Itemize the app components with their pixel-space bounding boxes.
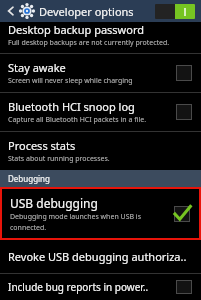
button[interactable]: Bluetooth HCI snoop log: [0, 93, 201, 131]
staticText: Developer options: [39, 4, 134, 19]
staticText: Screen will never sleep while charging: [8, 76, 133, 86]
staticText: Debugging: [8, 173, 50, 184]
button[interactable]: Unchecked: [173, 280, 195, 294]
staticText: Desktop backup password: [8, 22, 145, 37]
staticText: Stay awake: [8, 60, 66, 75]
staticText: Revoke USB debugging authoriza..: [8, 249, 187, 264]
staticText: Process stats: [8, 138, 76, 153]
button[interactable]: Include bug reports in power..: [0, 274, 201, 300]
button[interactable]: Checked: [171, 203, 193, 225]
staticText: Capture all Bluetooth HCI packets in a f…: [8, 115, 147, 125]
button[interactable]: Developer options on: [155, 4, 195, 19]
button[interactable]: Unchecked: [173, 101, 195, 123]
button[interactable]: Revoke USB debugging authoriza..: [0, 240, 201, 273]
button[interactable]: USB debugging: [2, 189, 199, 238]
staticText: Bluetooth HCI snoop log: [8, 99, 135, 114]
button[interactable]: Unchecked: [173, 62, 195, 84]
staticText: Include bug reports in power..: [8, 280, 149, 294]
button[interactable]: Desktop backup password: [0, 22, 201, 53]
staticText: Debugging mode launches when USB is conn…: [10, 212, 167, 232]
button[interactable]: Back: [4, 4, 18, 18]
button[interactable]: Stay awake: [0, 54, 201, 92]
staticText: USB debugging: [10, 195, 98, 211]
staticText: Full desktop backups are not currently p…: [8, 38, 170, 48]
staticText: Stats about running processes.: [8, 154, 110, 164]
button[interactable]: Process stats: [0, 132, 201, 170]
